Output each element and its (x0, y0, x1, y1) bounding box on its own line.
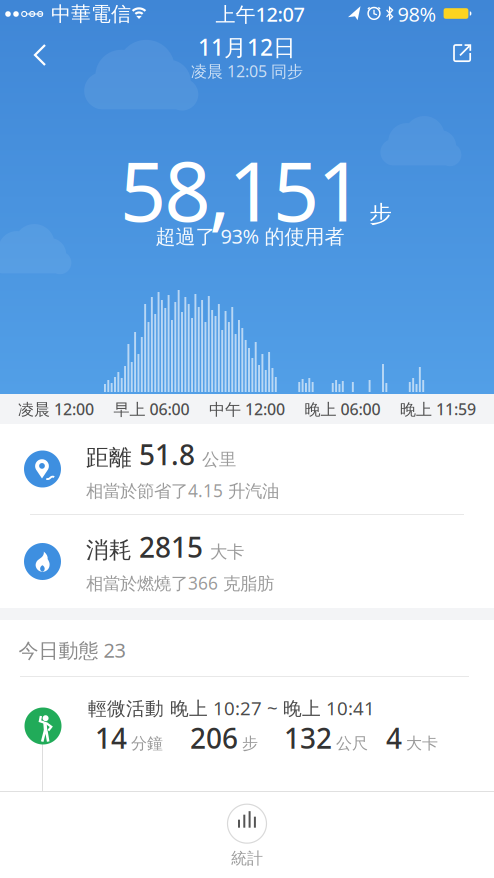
staticText: 今日動態 23 (18, 637, 125, 663)
staticText: 4 (386, 719, 402, 757)
staticText: 2815 (139, 528, 203, 566)
staticText: 公尺 (336, 734, 368, 753)
staticText: 輕微活動 晚上 10:27 ~ 晚上 10:41 (88, 696, 375, 720)
staticText: 11月12日 (198, 32, 296, 62)
button[interactable]: 返回 (28, 43, 51, 67)
staticText: 大卡 (406, 734, 438, 753)
staticText: 超過了 93% 的使用者 (155, 223, 344, 249)
staticText: 上午12:07 (215, 1, 304, 27)
staticText: 早上 06:00 (113, 398, 189, 420)
staticText: 距離 (86, 444, 132, 472)
staticText: 步 (369, 200, 392, 228)
staticText: 凌晨 12:05 同步 (191, 60, 303, 82)
staticText: 大卡 (210, 541, 244, 563)
staticText: 中華電信 (51, 2, 131, 26)
staticText: 132 (284, 719, 332, 757)
staticText: 消耗 (86, 536, 132, 564)
staticText: 中午 12:00 (209, 398, 285, 420)
staticText: 98% (397, 1, 436, 27)
staticText: 晚上 11:59 (400, 398, 476, 420)
staticText: 58,151 (120, 136, 364, 244)
staticText: 晚上 06:00 (304, 398, 380, 420)
staticText: 分鐘 (131, 734, 163, 753)
staticText: 相當於燃燒了366 克脂肪 (86, 572, 274, 595)
button[interactable]: 輕微活動 晚上 10:27 ~ 晚上 10:41 (0, 677, 494, 791)
staticText: 步 (242, 734, 258, 753)
staticText: 206 (190, 719, 238, 757)
staticText: 14 (95, 719, 127, 757)
staticText: 公里 (202, 449, 236, 470)
staticText: 相當於節省了4.15 升汽油 (86, 479, 279, 502)
staticText: 51.8 (139, 436, 195, 473)
staticText: 統計 (231, 849, 263, 868)
button[interactable]: 分享 (453, 44, 473, 64)
button[interactable]: 統計 (227, 804, 267, 868)
staticText: 凌晨 12:00 (18, 398, 94, 420)
